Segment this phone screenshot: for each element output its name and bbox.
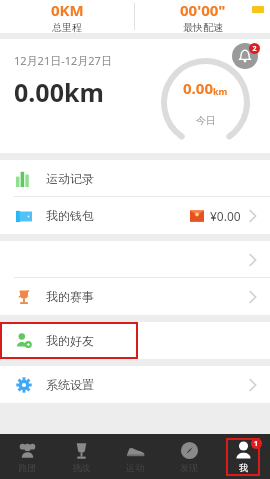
- button[interactable]: 我的赛事: [0, 278, 270, 315]
- button[interactable]: 我的钱包: [0, 197, 270, 234]
- staticText: 最快配速: [183, 21, 223, 33]
- staticText: 系统设置: [46, 377, 94, 392]
- staticText: 我: [239, 462, 248, 473]
- button[interactable]: 系统设置: [0, 366, 270, 403]
- staticText: 12月21日-12月27日: [14, 53, 112, 68]
- staticText: 我的好友: [46, 333, 94, 348]
- staticText: 1: [254, 439, 259, 449]
- button[interactable]: [0, 241, 270, 278]
- staticText: km: [213, 85, 228, 97]
- button[interactable]: 挑战: [54, 434, 108, 479]
- staticText: 我的钱包: [46, 208, 94, 223]
- button[interactable]: 我的好友: [0, 322, 270, 359]
- staticText: 今日: [196, 114, 216, 127]
- staticText: 0KM: [51, 0, 84, 20]
- button[interactable]: 发现: [162, 434, 216, 479]
- button[interactable]: 跑团: [0, 434, 54, 479]
- staticText: 我的赛事: [46, 289, 94, 304]
- staticText: 跑团: [18, 462, 36, 473]
- staticText: 运动记录: [46, 171, 94, 186]
- button[interactable]: 运动: [108, 434, 162, 479]
- staticText: 挑战: [72, 462, 90, 473]
- staticText: 0.00km: [14, 75, 104, 109]
- button[interactable]: 运动记录: [0, 160, 270, 197]
- staticText: ¥0.00: [210, 208, 241, 224]
- staticText: 2: [252, 44, 257, 54]
- staticText: 发现: [180, 462, 198, 473]
- button[interactable]: Notifications: [232, 43, 258, 69]
- button[interactable]: 我: [216, 434, 270, 479]
- staticText: 运动: [126, 462, 144, 473]
- staticText: 0.00: [183, 78, 213, 98]
- staticText: 总里程: [52, 21, 82, 33]
- staticText: 00'00": [180, 0, 226, 20]
